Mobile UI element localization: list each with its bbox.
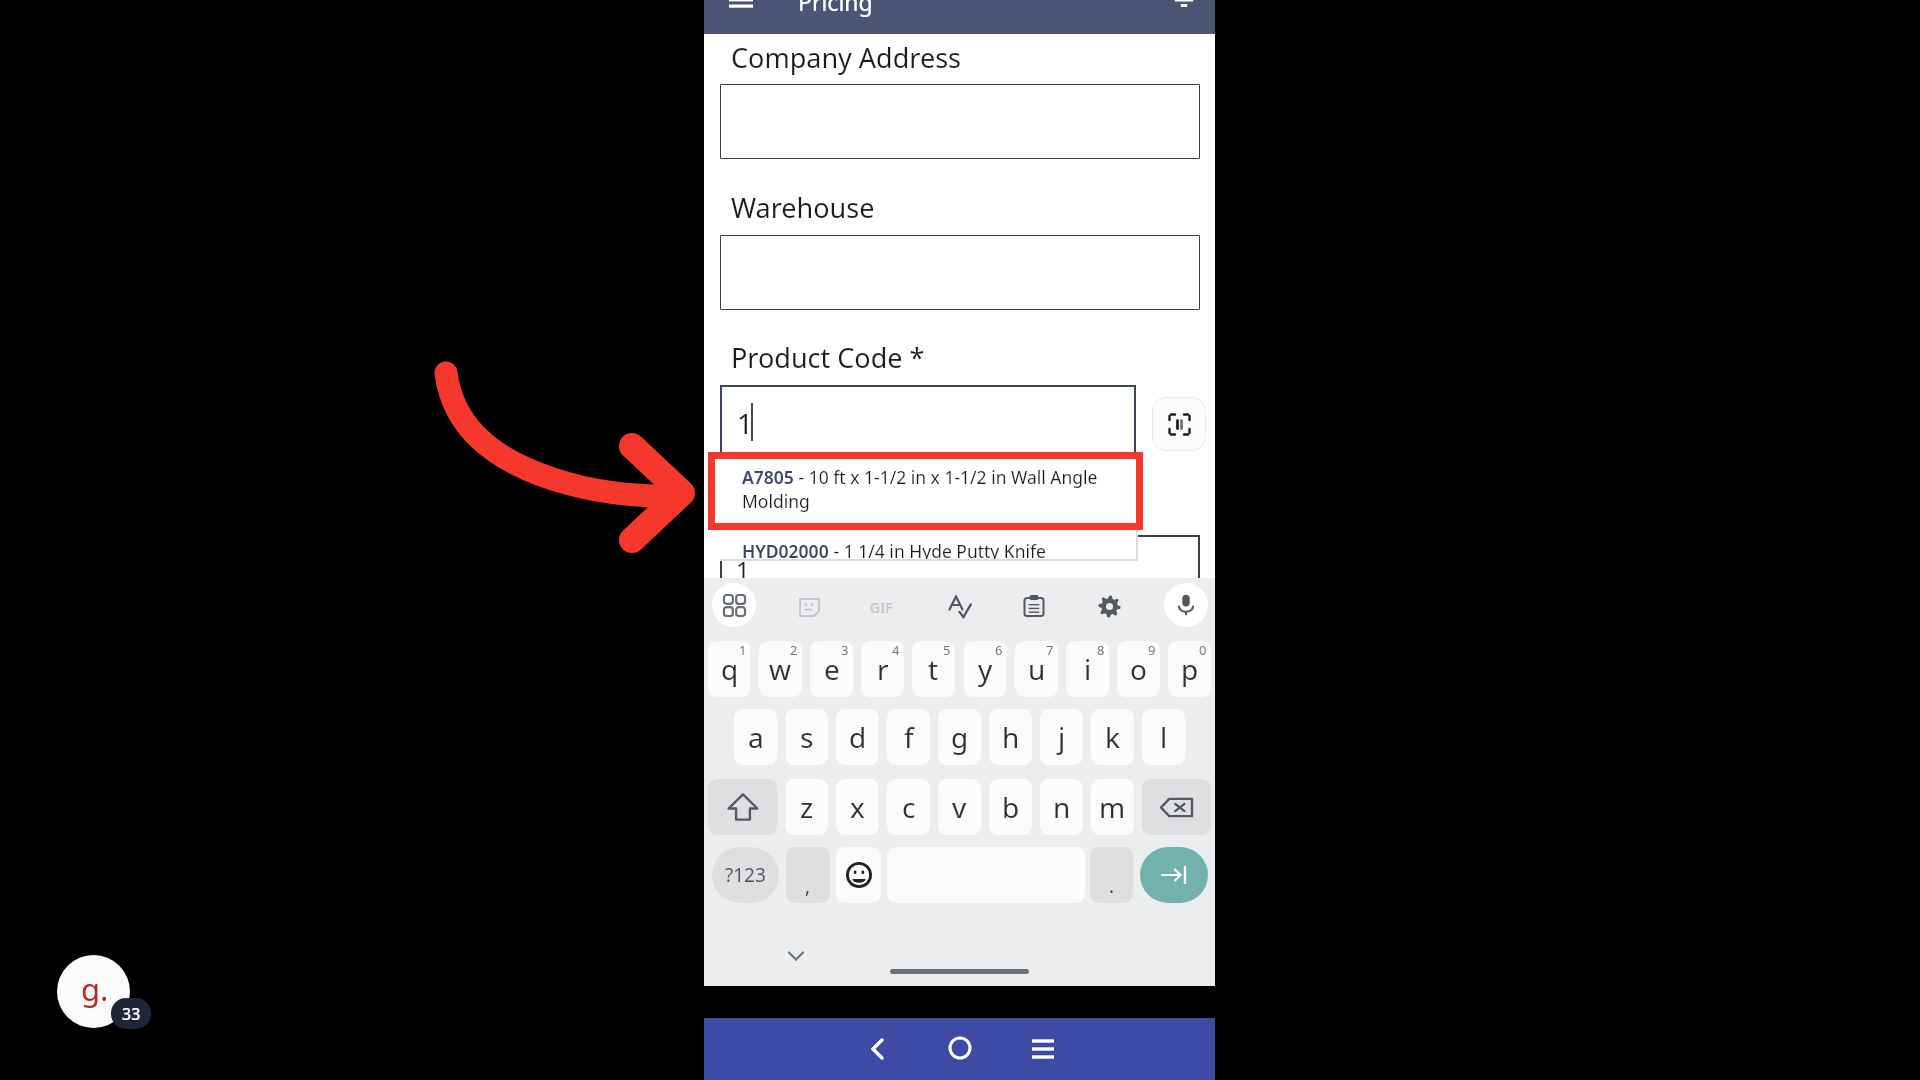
staticText: 1 xyxy=(736,553,750,586)
button[interactable]: z xyxy=(785,779,828,835)
button[interactable]: j xyxy=(1040,709,1083,765)
button[interactable]: Voice input xyxy=(1164,583,1208,627)
staticText: m xyxy=(1099,788,1126,826)
button[interactable] xyxy=(720,235,1200,310)
button[interactable]: r xyxy=(861,641,904,697)
staticText: b xyxy=(1002,788,1020,826)
button[interactable]: Backspace xyxy=(1142,779,1211,835)
button[interactable]: Hide keyboard xyxy=(782,942,810,970)
button[interactable]: Clipboard xyxy=(1012,584,1056,628)
staticText: 0 xyxy=(1199,641,1207,659)
button[interactable]: Comma xyxy=(786,847,830,903)
button[interactable]: t xyxy=(912,641,955,697)
button[interactable]: p xyxy=(1168,641,1211,697)
button[interactable]: g xyxy=(938,709,981,765)
button[interactable]: Next field xyxy=(1140,847,1208,903)
button[interactable]: x xyxy=(836,779,879,835)
button[interactable]: h xyxy=(989,709,1032,765)
staticText: Molding xyxy=(742,489,810,513)
staticText: 33 xyxy=(122,1003,141,1025)
staticText: 7 xyxy=(1046,641,1054,659)
staticText: d xyxy=(849,718,867,756)
staticText: 2 xyxy=(790,641,798,659)
staticText: Warehouse xyxy=(731,189,875,226)
staticText: 6 xyxy=(995,641,1003,659)
button[interactable]: Stickers xyxy=(787,584,831,628)
staticText: o xyxy=(1130,650,1147,688)
staticText: Company Address xyxy=(731,39,962,76)
staticText: l xyxy=(1160,718,1168,756)
staticText: f xyxy=(904,718,914,756)
staticText: 8 xyxy=(1097,641,1105,659)
button[interactable]: Text editing xyxy=(937,584,981,628)
button[interactable]: Scan barcode xyxy=(1152,397,1206,451)
button[interactable]: l xyxy=(1142,709,1185,765)
staticText: v xyxy=(952,788,967,826)
button[interactable]: Keyboard toolbox xyxy=(712,583,756,627)
button[interactable]: a xyxy=(734,709,777,765)
staticText: x xyxy=(850,788,865,826)
staticText: p xyxy=(1181,650,1199,688)
button[interactable]: Keyboard settings xyxy=(1087,584,1131,628)
staticText: A7805 xyxy=(742,465,794,489)
staticText: - 10 ft x 1-1/2 in x 1-1/2 in Wall Angle xyxy=(794,465,1098,489)
staticText: 3 xyxy=(841,641,849,659)
button[interactable]: i xyxy=(1066,641,1109,697)
button[interactable]: v xyxy=(938,779,981,835)
staticText: ?123 xyxy=(725,862,766,888)
button[interactable]: o xyxy=(1117,641,1160,697)
staticText: 1 xyxy=(737,404,754,442)
button[interactable]: Period xyxy=(1090,847,1133,903)
staticText: a xyxy=(748,718,764,756)
staticText: t xyxy=(928,650,939,688)
staticText: e xyxy=(824,650,840,688)
staticText: k xyxy=(1105,718,1120,756)
staticText: h xyxy=(1002,718,1020,756)
staticText: 4 xyxy=(892,641,900,659)
button[interactable]: 1 xyxy=(720,535,1200,609)
button[interactable]: 1 xyxy=(720,385,1136,459)
button[interactable]: c xyxy=(887,779,930,835)
button[interactable]: Filter xyxy=(1166,0,1202,16)
staticText: Pricing xyxy=(798,0,873,17)
staticText: i xyxy=(1084,650,1092,688)
staticText: r xyxy=(877,650,889,688)
button[interactable]: w xyxy=(759,641,802,697)
button[interactable]: Recent apps xyxy=(1025,1031,1061,1067)
button[interactable]: Back xyxy=(859,1031,895,1067)
button[interactable]: Open navigation menu xyxy=(717,0,753,16)
button[interactable]: d xyxy=(836,709,879,765)
button[interactable]: HYD02000 xyxy=(720,539,1136,559)
button[interactable]: Guidde watermark xyxy=(57,955,130,1028)
button[interactable]: Home xyxy=(942,1031,978,1067)
staticText: y xyxy=(978,650,993,688)
staticText: 5 xyxy=(943,641,951,659)
staticText: . xyxy=(1109,873,1115,899)
button[interactable]: ?123 xyxy=(712,847,779,903)
button[interactable]: k xyxy=(1091,709,1134,765)
staticText: 9 xyxy=(1148,641,1156,659)
button[interactable] xyxy=(720,84,1200,159)
staticText: q xyxy=(721,650,739,688)
button[interactable]: s xyxy=(785,709,828,765)
button[interactable]: Emoji xyxy=(836,847,881,903)
staticText: n xyxy=(1053,788,1071,826)
button[interactable]: e xyxy=(810,641,853,697)
button[interactable]: b xyxy=(989,779,1032,835)
button[interactable]: A7805 xyxy=(720,457,1136,525)
button[interactable]: m xyxy=(1091,779,1134,835)
button[interactable]: Shift xyxy=(708,779,777,835)
staticText: - 1 1/4 in Hyde Putty Knife xyxy=(829,539,1046,559)
button[interactable]: u xyxy=(1015,641,1058,697)
button[interactable]: n xyxy=(1040,779,1083,835)
staticText: Product Code * xyxy=(731,339,925,376)
staticText: , xyxy=(805,873,811,899)
button[interactable]: y xyxy=(964,641,1007,697)
button[interactable]: f xyxy=(887,709,930,765)
staticText: s xyxy=(800,718,814,756)
staticText: u xyxy=(1028,650,1046,688)
staticText: HYD02000 xyxy=(742,539,829,559)
staticText: GIF xyxy=(870,598,893,617)
button[interactable]: q xyxy=(708,641,751,697)
